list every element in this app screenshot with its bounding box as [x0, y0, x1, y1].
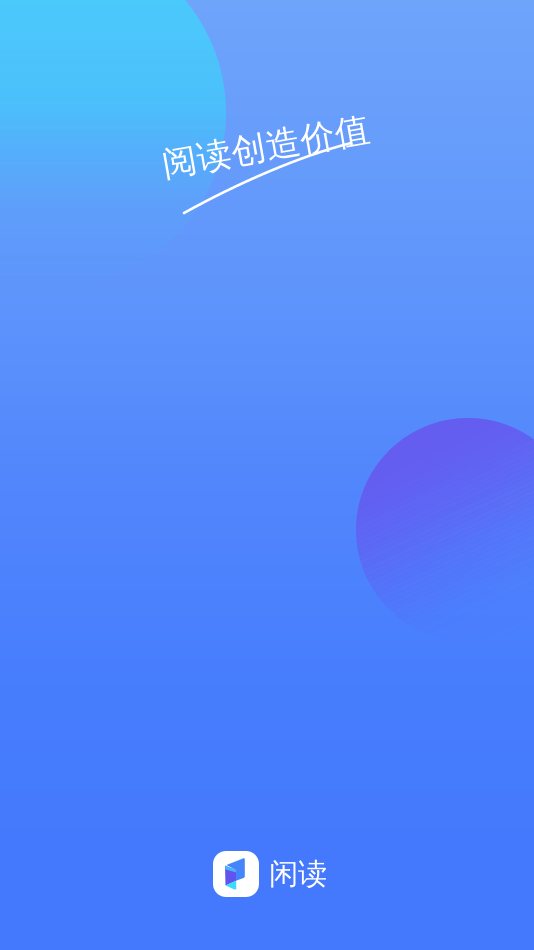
- staticText: 阅读创造价值: [161, 126, 371, 168]
- staticText: 闲读: [269, 856, 327, 892]
